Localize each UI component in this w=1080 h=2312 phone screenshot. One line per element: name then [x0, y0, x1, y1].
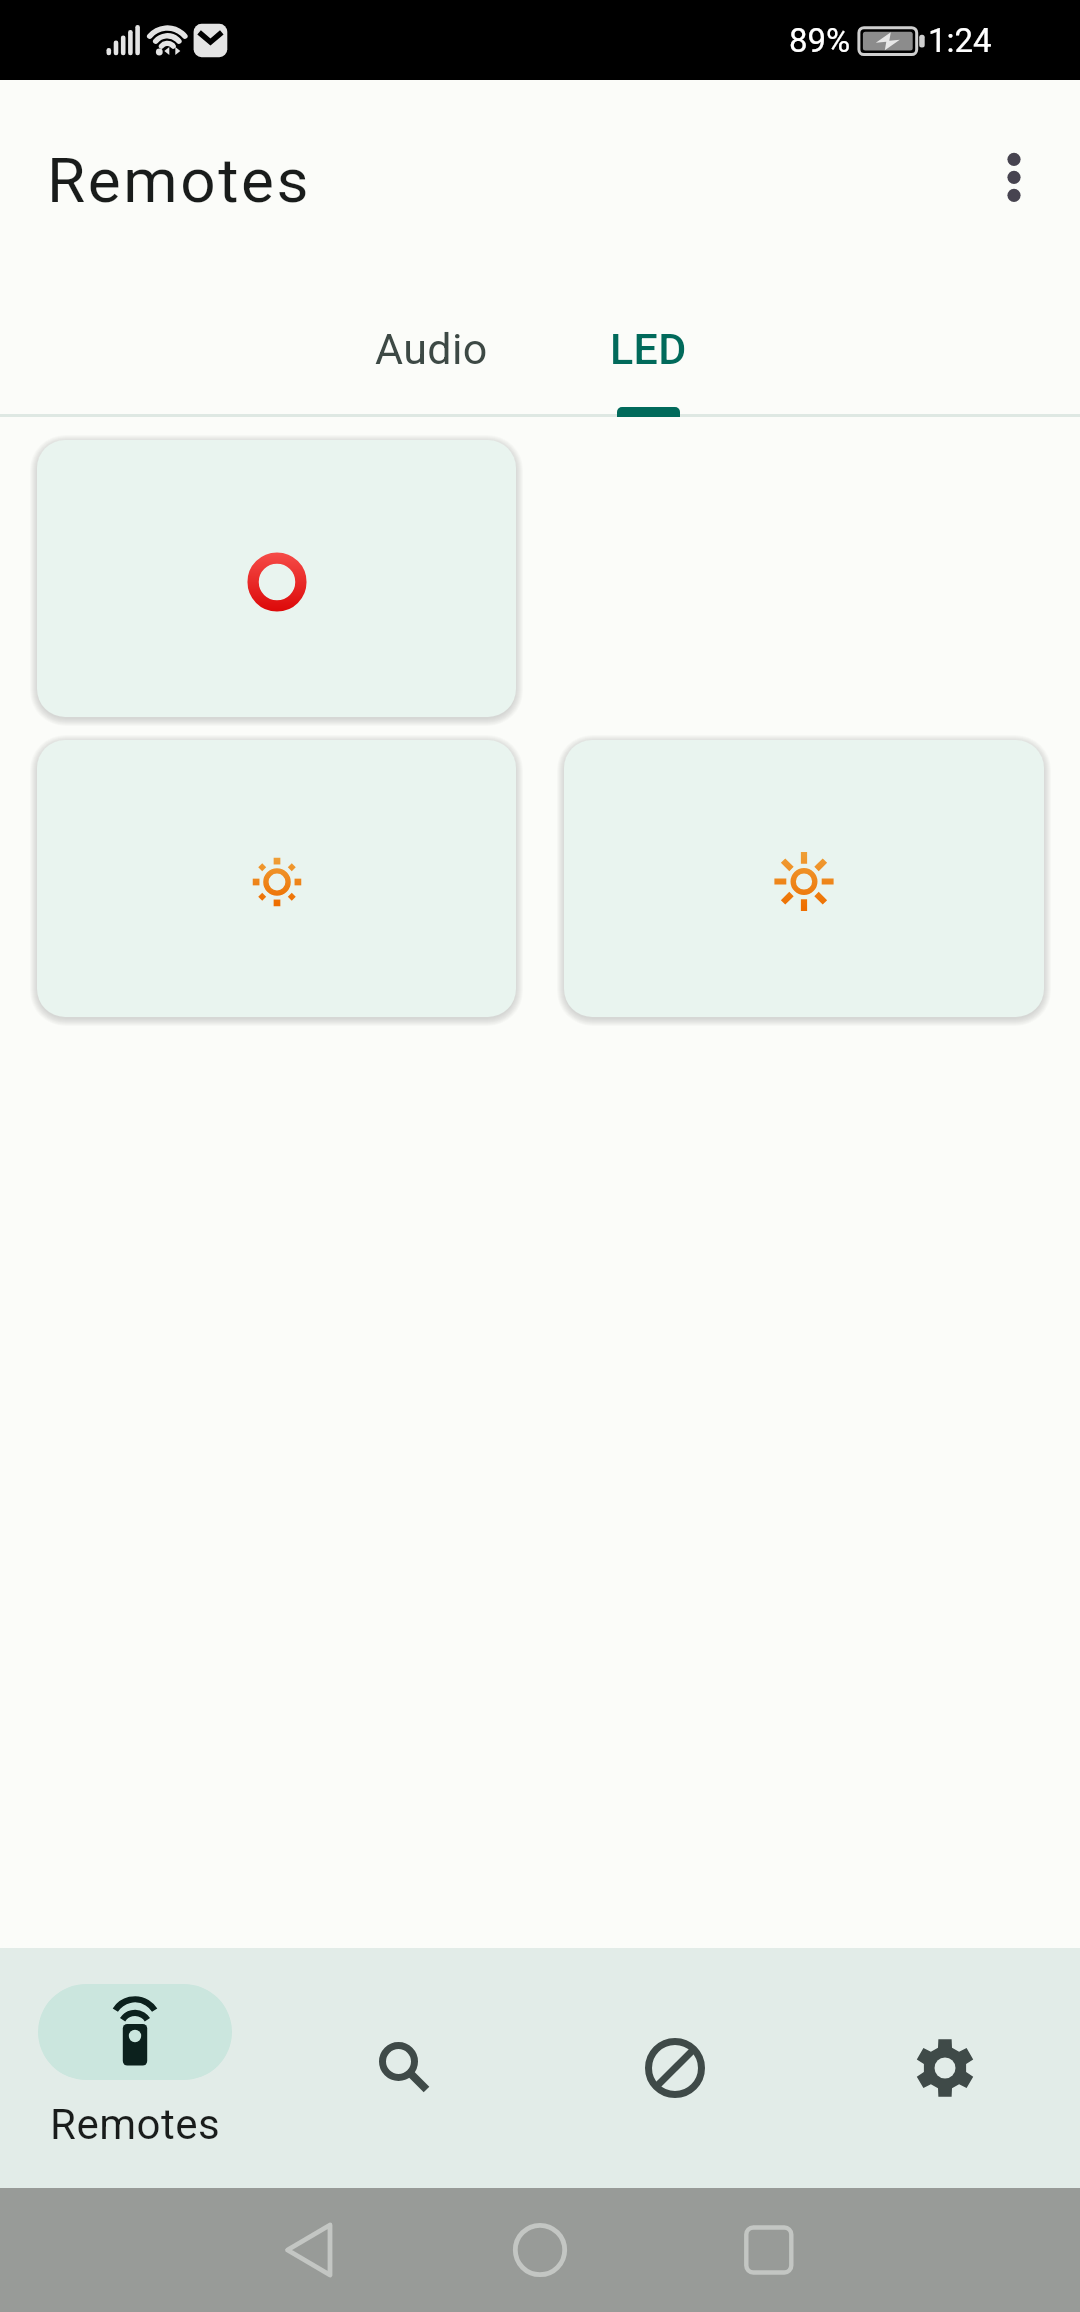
staticText: Remotes: [47, 144, 312, 217]
staticText: Audio: [375, 324, 488, 374]
button[interactable]: Remotes: [0, 1948, 270, 2188]
button[interactable]: Brightness low: [37, 740, 516, 1017]
staticText: Remotes: [50, 2100, 221, 2149]
button[interactable]: More options: [964, 130, 1064, 230]
button[interactable]: Settings: [810, 1948, 1080, 2188]
button[interactable]: Brightness high: [564, 740, 1044, 1017]
button[interactable]: Blocked: [540, 1948, 810, 2188]
button[interactable]: Search: [270, 1948, 540, 2188]
button[interactable]: LED: [542, 280, 754, 417]
staticText: LED: [610, 324, 687, 374]
button[interactable]: Audio: [320, 280, 542, 417]
staticText: 1:24: [928, 21, 992, 60]
button[interactable]: Power: [37, 440, 516, 717]
staticText: 89%: [789, 21, 851, 60]
